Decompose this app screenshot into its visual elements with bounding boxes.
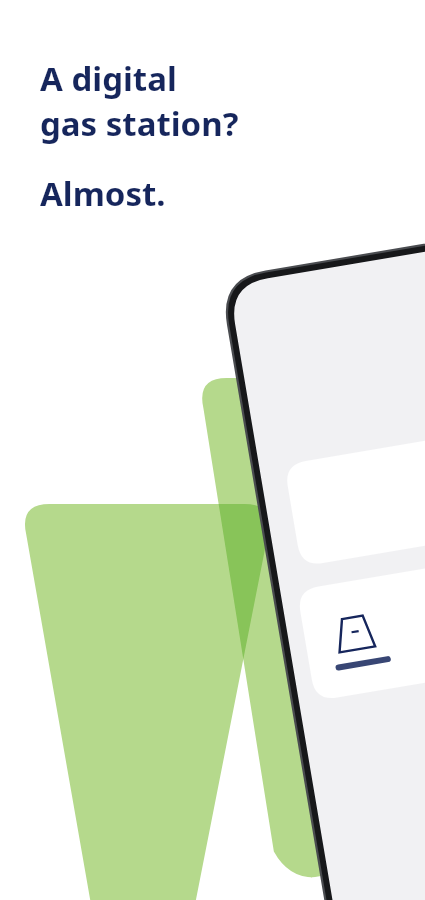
button[interactable]: A digital gas station? bbox=[40, 56, 239, 216]
staticText: A digital gas station? bbox=[40, 56, 239, 145]
other: App preview bbox=[0, 0, 425, 900]
staticText: Almost. bbox=[40, 171, 166, 216]
